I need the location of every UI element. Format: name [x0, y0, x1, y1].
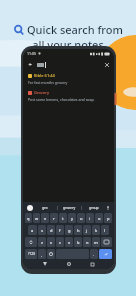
staticText: l	[104, 228, 106, 233]
staticText: b	[77, 240, 80, 245]
button[interactable]: a	[28, 225, 37, 235]
staticText: t	[62, 216, 64, 221]
button[interactable]: f	[56, 225, 64, 235]
button[interactable]: group	[82, 203, 105, 212]
button[interactable]: Keyboard options	[27, 205, 33, 211]
button[interactable]: t	[59, 213, 67, 223]
staticText: y	[71, 216, 74, 221]
button[interactable]: .	[90, 249, 98, 259]
staticText: Grocery	[34, 90, 50, 95]
button[interactable]	[47, 249, 55, 259]
staticText: i	[89, 216, 91, 221]
button[interactable]: i	[86, 213, 94, 223]
button[interactable]: x	[47, 237, 55, 247]
button[interactable]: n	[83, 237, 91, 247]
staticText: s	[41, 228, 43, 233]
staticText: a	[31, 228, 34, 233]
staticText: x	[50, 240, 53, 245]
button[interactable]: Back	[41, 260, 49, 268]
staticText: Bible 61:44	[34, 73, 55, 78]
button[interactable]: o	[95, 213, 103, 223]
button[interactable]: Clear search	[103, 61, 110, 68]
staticText: o	[98, 216, 101, 221]
staticText: m	[94, 240, 98, 245]
button[interactable]: Search	[99, 249, 112, 259]
button[interactable]: Voice input	[105, 205, 110, 210]
button[interactable]: e	[41, 213, 49, 223]
button[interactable]: y	[68, 213, 76, 223]
button[interactable]: j	[83, 225, 91, 235]
staticText: g	[68, 228, 71, 233]
button[interactable]: v	[65, 237, 73, 247]
staticText: all your notes	[32, 37, 104, 52]
button[interactable]: gro	[33, 203, 57, 212]
staticText: r	[53, 216, 55, 221]
staticText: n	[86, 240, 89, 245]
button[interactable]	[25, 237, 37, 247]
staticText: 11:05	[27, 51, 36, 56]
staticText: k	[95, 228, 98, 233]
staticText: For fast months grocery	[28, 80, 68, 85]
staticText: w	[35, 216, 39, 221]
button[interactable]: q	[25, 213, 32, 223]
button[interactable]: p	[104, 213, 112, 223]
staticText: .	[93, 252, 95, 257]
button[interactable]: l	[101, 225, 109, 235]
staticText: ,	[41, 252, 43, 257]
button[interactable]: Bible 61:44	[23, 73, 114, 85]
button[interactable]: z	[38, 237, 46, 247]
staticText: p	[107, 216, 110, 221]
button[interactable]: w	[33, 213, 40, 223]
button[interactable]: Back	[27, 61, 34, 68]
button[interactable]: r	[50, 213, 58, 223]
button[interactable]: Back	[23, 58, 114, 71]
staticText: e	[44, 216, 47, 221]
staticText: u	[80, 216, 83, 221]
staticText: c	[59, 240, 61, 245]
button[interactable]: c	[56, 237, 64, 247]
staticText: h	[77, 228, 80, 233]
button[interactable]: ,	[38, 249, 46, 259]
button[interactable]: h	[74, 225, 82, 235]
staticText: q	[27, 216, 30, 221]
staticText: ?123	[28, 252, 35, 256]
button[interactable]: b	[74, 237, 82, 247]
staticText: grocery	[63, 205, 76, 210]
button[interactable]: u	[77, 213, 85, 223]
button[interactable]: ?123	[25, 249, 37, 259]
staticText: Quick search from	[27, 22, 123, 37]
staticText: gro	[42, 205, 48, 210]
button[interactable]: k	[92, 225, 100, 235]
staticText: Post some lemons, chocolates and soap.	[28, 97, 95, 102]
button[interactable]: Grocery	[23, 90, 114, 102]
button[interactable]: s	[38, 225, 46, 235]
button[interactable]: grocery	[58, 203, 81, 212]
button[interactable]	[101, 237, 112, 247]
button[interactable]: d	[47, 225, 55, 235]
button[interactable]: Home	[65, 260, 73, 268]
button[interactable]: m	[92, 237, 100, 247]
button[interactable]: Recents	[88, 260, 96, 268]
staticText: group	[89, 205, 99, 210]
staticText: z	[41, 240, 43, 245]
button[interactable]: g	[65, 225, 73, 235]
staticText: f	[59, 228, 61, 233]
staticText: v	[68, 240, 71, 245]
staticText: j	[86, 228, 88, 233]
staticText: d	[50, 228, 53, 233]
